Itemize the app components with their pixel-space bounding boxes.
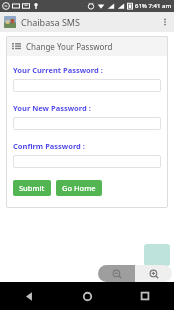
button[interactable] bbox=[13, 117, 161, 130]
button[interactable]: More options bbox=[156, 13, 174, 31]
staticText: Go Home bbox=[62, 183, 96, 193]
button[interactable]: Recents bbox=[116, 282, 174, 310]
staticText: Submit bbox=[19, 183, 45, 193]
button[interactable]: Submit bbox=[13, 180, 51, 196]
staticText: 61% 7:41 am bbox=[135, 2, 172, 10]
staticText: Chaibasa SMS bbox=[21, 16, 80, 28]
button[interactable]: Zoom in bbox=[135, 265, 172, 282]
button[interactable]: Go Home bbox=[56, 180, 102, 196]
button[interactable] bbox=[13, 155, 161, 168]
staticText: Your New Password : bbox=[13, 103, 91, 113]
staticText: Confirm Password : bbox=[13, 141, 85, 151]
button[interactable] bbox=[13, 79, 161, 92]
button[interactable]: Zoom out bbox=[98, 265, 135, 282]
staticText: Your Current Password : bbox=[13, 65, 103, 75]
button[interactable]: Home bbox=[58, 282, 116, 310]
button[interactable]: Back bbox=[0, 282, 58, 310]
staticText: Change Your Password bbox=[26, 41, 113, 52]
